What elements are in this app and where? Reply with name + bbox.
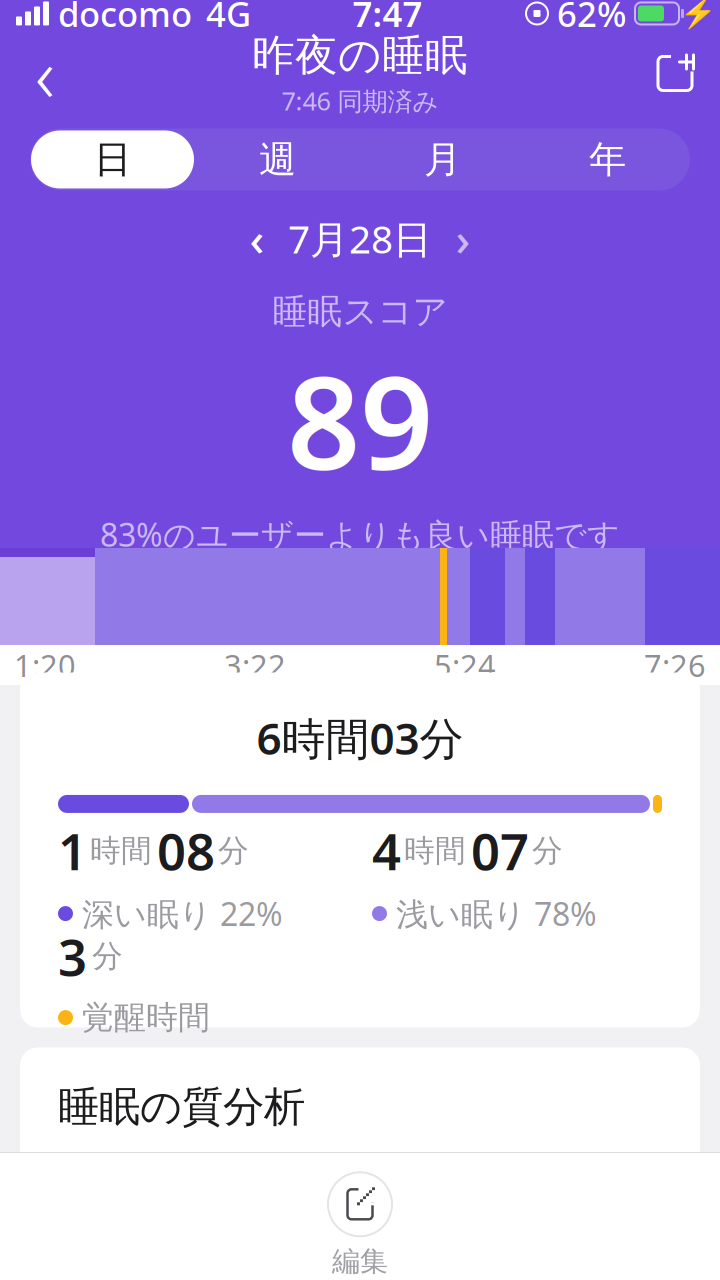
staticText: ‹ <box>249 208 264 269</box>
button[interactable]: 月 <box>360 128 525 190</box>
staticText: 08 <box>157 817 215 884</box>
staticText: 時間 <box>404 832 466 869</box>
button[interactable]: 編集 <box>250 1153 470 1280</box>
staticText: 分 <box>92 937 123 975</box>
staticText: 月 <box>424 136 461 182</box>
staticText: 深い眠り 22% <box>82 892 283 935</box>
staticText: ⚡ <box>679 0 716 30</box>
staticText: 6時間03分 <box>256 708 463 767</box>
staticText: 時間 <box>90 832 152 869</box>
staticText: 浅い眠り 78% <box>396 892 597 935</box>
staticText: 5:24 <box>434 645 496 685</box>
staticText: 睡眠スコア <box>272 290 447 333</box>
staticText: 分 <box>532 832 563 869</box>
button[interactable]: 戻る <box>0 34 90 112</box>
staticText: 4G <box>206 0 251 36</box>
button[interactable]: 次の日 <box>435 212 491 264</box>
staticText: 睡眠の質分析 <box>58 1081 305 1132</box>
staticText: 年 <box>589 136 626 182</box>
staticText: 3 <box>58 923 87 990</box>
staticText: 7月28日 <box>288 213 432 264</box>
staticText: 1 <box>58 817 87 884</box>
staticText: 1:20 <box>14 645 76 685</box>
button[interactable]: 年 <box>525 128 690 190</box>
button[interactable]: 前の日 <box>229 212 285 264</box>
staticText: ‹ <box>35 24 55 123</box>
staticText: › <box>455 208 470 269</box>
button[interactable]: 共有 <box>630 34 720 112</box>
staticText: docomo <box>58 0 192 36</box>
staticText: 分 <box>218 832 249 869</box>
staticText: 7:47 <box>352 0 422 36</box>
staticText: 編集 <box>332 1244 388 1279</box>
staticText: 覚醒時間 <box>82 998 210 1037</box>
staticText: 83%のユーザーよりも良い睡眠です <box>100 513 620 555</box>
staticText: 62% <box>557 0 627 36</box>
staticText: 昨夜の睡眠 <box>252 29 468 82</box>
staticText: 89 <box>287 335 433 505</box>
staticText: 3:22 <box>224 645 286 685</box>
button[interactable]: 日 <box>30 128 195 190</box>
staticText: 日 <box>94 136 131 182</box>
button[interactable]: 週 <box>195 128 360 190</box>
staticText: 7:46 同期済み <box>281 84 438 117</box>
staticText: 7:26 <box>644 645 706 685</box>
staticText: 4 <box>372 817 401 884</box>
staticText: 07 <box>471 817 529 884</box>
staticText: 週 <box>259 136 296 182</box>
